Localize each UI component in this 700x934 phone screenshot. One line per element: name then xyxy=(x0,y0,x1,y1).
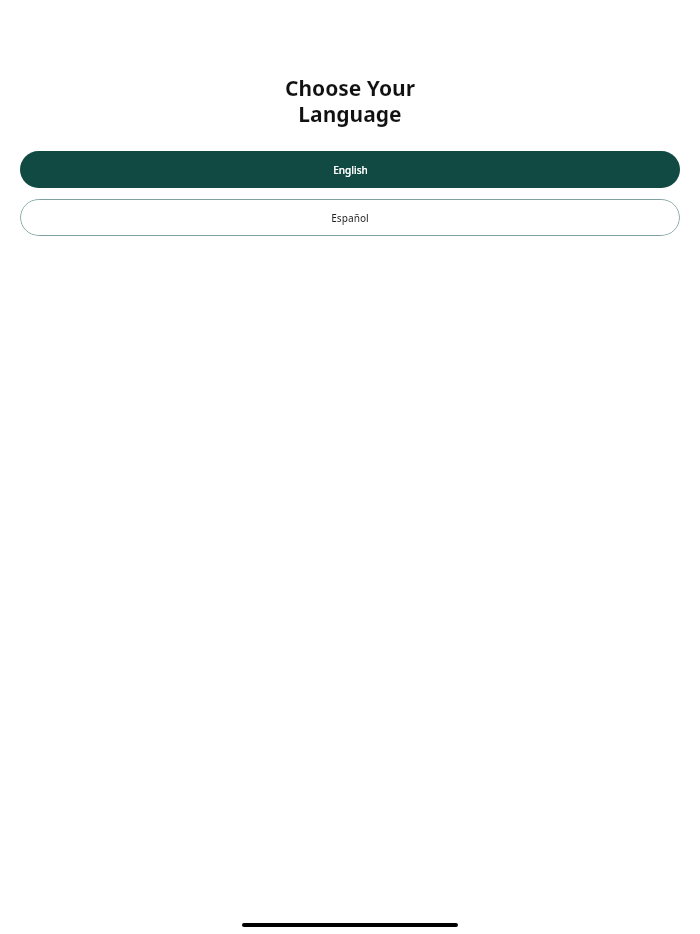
staticText: Choose Your Language xyxy=(0,74,700,129)
button[interactable]: Español xyxy=(20,199,680,236)
button[interactable]: English xyxy=(20,151,680,188)
staticText: Español xyxy=(331,211,369,225)
staticText: English xyxy=(333,163,368,177)
